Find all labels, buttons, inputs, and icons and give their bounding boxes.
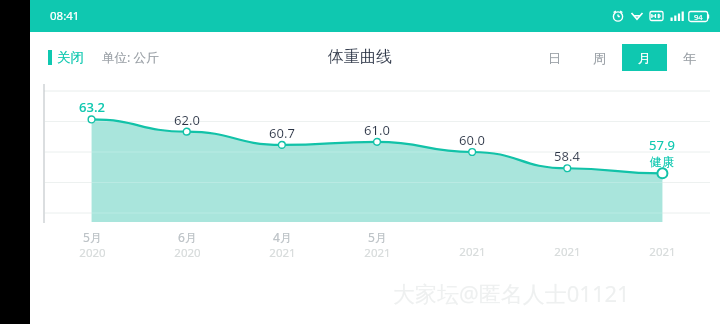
staticText: 大家坛@匿名人士01121 bbox=[392, 277, 629, 307]
staticText: 周 bbox=[593, 50, 606, 66]
staticText: 关闭 bbox=[57, 49, 84, 66]
staticText: 单位: 公斤 bbox=[102, 49, 159, 66]
staticText: 2021 bbox=[364, 245, 391, 261]
staticText: 2021 bbox=[554, 244, 581, 260]
staticText: 94 bbox=[694, 12, 703, 22]
staticText: 5月 bbox=[83, 229, 102, 245]
staticText: 08:41 bbox=[50, 8, 80, 24]
staticText: 5月 bbox=[368, 229, 387, 245]
button[interactable]: 周 bbox=[577, 44, 622, 71]
staticText: 体重曲线 bbox=[328, 47, 392, 67]
staticText: 2020 bbox=[79, 245, 106, 261]
staticText: 2021 bbox=[649, 244, 676, 260]
staticText: 62.0 bbox=[174, 111, 200, 129]
staticText: 2021 bbox=[269, 245, 296, 261]
button[interactable]: 年 bbox=[667, 44, 712, 71]
staticText: 4月 bbox=[273, 229, 292, 245]
button[interactable]: 日 bbox=[532, 44, 577, 71]
staticText: 6月 bbox=[178, 229, 197, 245]
other: Battery 94 percent bbox=[688, 10, 710, 23]
other: Signal strength bbox=[669, 9, 683, 23]
other: Alarm bbox=[611, 9, 625, 23]
button[interactable]: 关闭 bbox=[48, 49, 84, 66]
staticText: 大家坛@匿名人士01121 bbox=[393, 278, 630, 308]
other: Wi-Fi bbox=[630, 9, 644, 23]
other: HD calling bbox=[649, 9, 664, 23]
staticText: 日 bbox=[548, 50, 561, 66]
staticText: 2020 bbox=[174, 245, 201, 261]
staticText: 57.9 bbox=[649, 136, 675, 154]
staticText: 60.7 bbox=[269, 124, 295, 142]
staticText: 月 bbox=[638, 50, 651, 66]
staticText: 58.4 bbox=[554, 147, 580, 165]
staticText: 61.0 bbox=[364, 121, 390, 139]
staticText: 健康 bbox=[650, 154, 674, 169]
staticText: 60.0 bbox=[459, 131, 485, 149]
button[interactable]: 月 bbox=[622, 44, 667, 71]
staticText: 2021 bbox=[459, 244, 486, 260]
staticText: 年 bbox=[683, 50, 696, 66]
staticText: 63.2 bbox=[79, 98, 105, 116]
